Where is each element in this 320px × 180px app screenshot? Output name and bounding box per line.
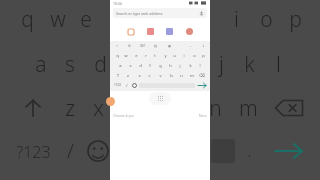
staticText: k <box>244 50 255 79</box>
staticText: / <box>126 83 128 88</box>
button[interactable] <box>166 28 173 35</box>
button[interactable]: ▤ <box>152 42 159 49</box>
button[interactable]: s <box>126 61 134 70</box>
button[interactable]: f <box>146 61 154 70</box>
staticText: i <box>234 5 239 34</box>
other: Go <box>273 143 305 159</box>
other: Voice search <box>199 11 204 16</box>
staticText: e <box>135 53 138 59</box>
button[interactable]: ?123 <box>112 81 123 89</box>
staticText: ⌫ <box>199 73 205 78</box>
staticText: p <box>202 53 205 59</box>
button[interactable]: z <box>124 71 132 80</box>
staticText: n <box>180 73 183 79</box>
staticText: m <box>239 94 258 123</box>
staticText: m <box>190 73 194 79</box>
button[interactable]: Go <box>196 81 208 89</box>
staticText: Chrome & you <box>113 114 134 118</box>
button[interactable]: ⚙ <box>126 42 133 49</box>
staticText: x <box>93 94 104 123</box>
staticText: g <box>159 63 162 69</box>
button[interactable]: ↑ <box>114 71 122 80</box>
button[interactable]: v <box>156 71 164 80</box>
staticText: GIF <box>140 44 146 48</box>
staticText: d <box>94 50 107 79</box>
button[interactable]: < <box>113 42 120 49</box>
staticText: z <box>65 94 75 123</box>
staticText: l <box>199 63 201 69</box>
button[interactable]: l <box>196 61 204 70</box>
button[interactable]: x <box>135 71 143 80</box>
button[interactable]: ↓ <box>200 42 207 49</box>
staticText: More <box>199 114 207 118</box>
staticText: a <box>119 63 122 69</box>
button[interactable]: g <box>156 61 164 70</box>
staticText: a <box>35 50 47 79</box>
button[interactable]: p <box>199 51 207 60</box>
button[interactable]: ▣ <box>166 42 173 49</box>
button[interactable]: Search or type web address <box>113 8 207 18</box>
staticText: h <box>169 63 172 69</box>
staticText: w <box>50 5 66 34</box>
staticText: ▣ <box>168 44 172 48</box>
staticText: b <box>170 73 173 79</box>
button[interactable]: m <box>188 71 196 80</box>
button[interactable]: ⌫ <box>198 71 206 80</box>
staticText: q <box>21 5 34 34</box>
staticText: ?123 <box>16 141 51 163</box>
button[interactable] <box>127 28 134 35</box>
staticText: o <box>193 53 196 59</box>
button[interactable]: q <box>113 51 121 60</box>
staticText: k <box>189 63 192 69</box>
staticText: v <box>159 73 162 79</box>
button[interactable]: b <box>167 71 175 80</box>
staticText: / <box>67 137 74 164</box>
button[interactable]: a <box>116 61 124 70</box>
button[interactable]: e <box>132 51 140 60</box>
staticText: f <box>149 63 151 69</box>
staticText: ⋯ <box>189 44 193 48</box>
other: Backspace <box>274 99 304 117</box>
button[interactable]: j <box>176 61 184 70</box>
staticText: j <box>179 63 181 69</box>
button[interactable]: d <box>136 61 144 70</box>
button[interactable]: r <box>142 51 150 60</box>
staticText: ▤ <box>154 44 158 48</box>
button[interactable]: u <box>170 51 178 60</box>
button[interactable]: h <box>166 61 174 70</box>
staticText: j <box>219 50 224 79</box>
staticText: l <box>276 50 281 79</box>
button[interactable]: GIF <box>139 42 146 49</box>
staticText: ?123 <box>114 83 121 87</box>
button[interactable]: c <box>145 71 153 80</box>
button[interactable] <box>147 28 154 35</box>
button[interactable]: n <box>177 71 185 80</box>
staticText: r <box>145 53 147 59</box>
button[interactable]: y <box>161 51 169 60</box>
staticText: s <box>65 50 75 79</box>
button[interactable]: t <box>151 51 159 60</box>
staticText: p <box>289 5 302 34</box>
button[interactable]: ⋯ <box>187 42 194 49</box>
staticText: c <box>148 73 151 79</box>
button[interactable]: Emoji <box>130 81 138 89</box>
staticText: q <box>116 53 119 59</box>
button[interactable]: i <box>180 51 188 60</box>
button[interactable]: k <box>186 61 194 70</box>
staticText: d <box>139 63 142 69</box>
staticText: e <box>80 5 92 34</box>
button[interactable]: o <box>190 51 198 60</box>
button[interactable]: w <box>122 51 130 60</box>
staticText: s <box>129 63 132 69</box>
staticText: z <box>127 73 129 79</box>
button[interactable] <box>186 28 193 35</box>
staticText: ↓ <box>202 44 205 48</box>
staticText: x <box>138 73 141 79</box>
button[interactable]: / <box>123 81 130 89</box>
button[interactable] <box>149 92 171 105</box>
staticText: w <box>124 53 128 59</box>
staticText: ↑ <box>116 73 120 78</box>
staticText: Search or type web address <box>116 11 163 16</box>
staticText: u <box>173 53 176 59</box>
